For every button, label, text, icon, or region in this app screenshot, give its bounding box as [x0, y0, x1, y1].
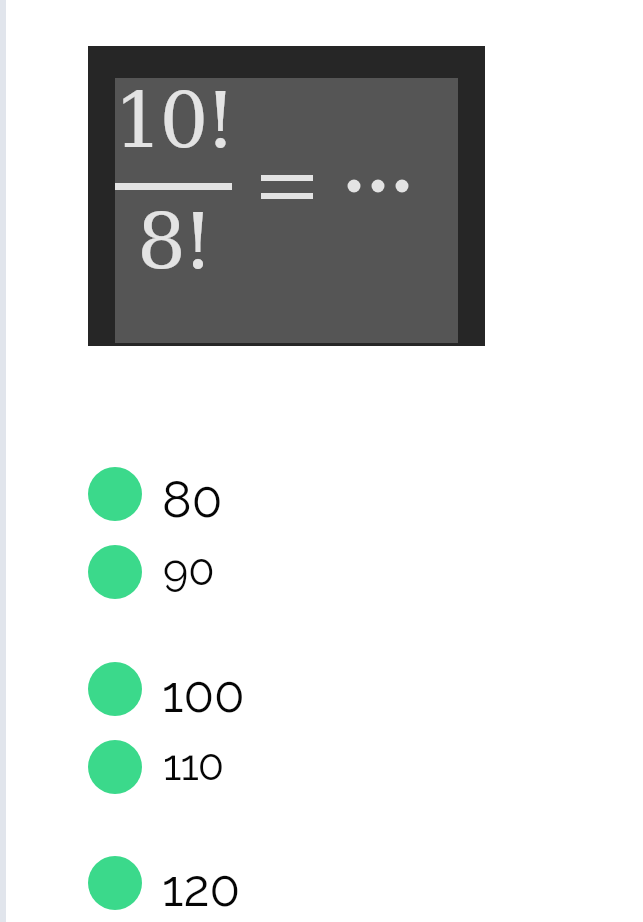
- staticText: 100: [162, 665, 245, 719]
- button[interactable]: 80: [88, 467, 223, 521]
- button[interactable]: 120: [88, 856, 241, 910]
- other: Question image: 10! divided by 8! equals: [88, 46, 485, 346]
- staticText: 8!: [137, 197, 210, 287]
- button[interactable]: 90: [88, 545, 214, 599]
- staticText: 10!: [114, 76, 233, 166]
- button[interactable]: 100: [88, 662, 245, 716]
- button[interactable]: 110: [88, 740, 223, 794]
- staticText: 90: [163, 545, 215, 595]
- staticText: 120: [162, 859, 241, 913]
- staticText: 110: [163, 740, 224, 790]
- staticText: 80: [162, 470, 223, 524]
